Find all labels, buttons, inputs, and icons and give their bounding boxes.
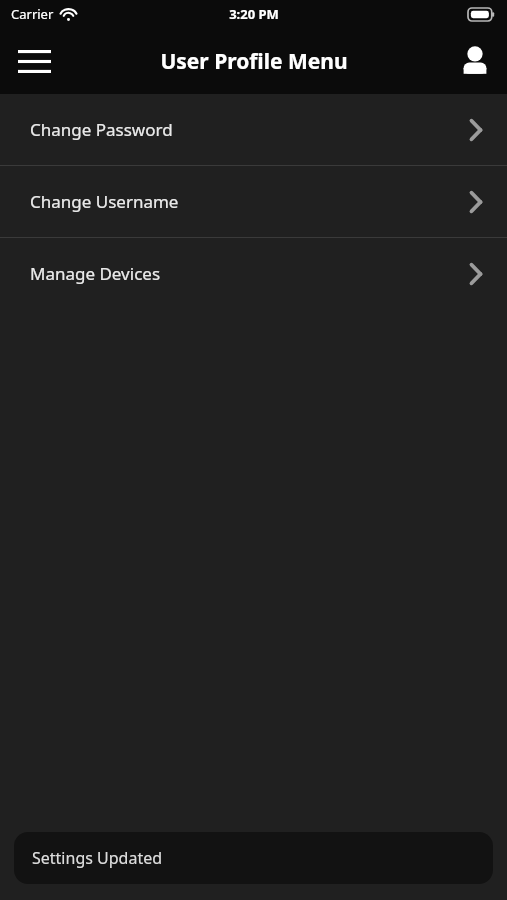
button[interactable]: Change Username — [0, 166, 507, 237]
staticText: Settings Updated — [32, 847, 163, 869]
button[interactable]: Change Password — [0, 94, 507, 165]
staticText: Change Username — [30, 190, 179, 213]
button[interactable]: Manage Devices — [0, 238, 507, 309]
button[interactable]: Profile — [451, 37, 499, 85]
staticText: Change Password — [30, 118, 173, 141]
staticText: Carrier — [11, 5, 54, 23]
button[interactable]: Settings Updated — [14, 832, 493, 884]
button[interactable]: Open navigation menu — [10, 37, 58, 85]
staticText: 3:20 PM — [229, 5, 279, 23]
staticText: User Profile Menu — [160, 47, 348, 76]
staticText: Manage Devices — [30, 262, 161, 285]
